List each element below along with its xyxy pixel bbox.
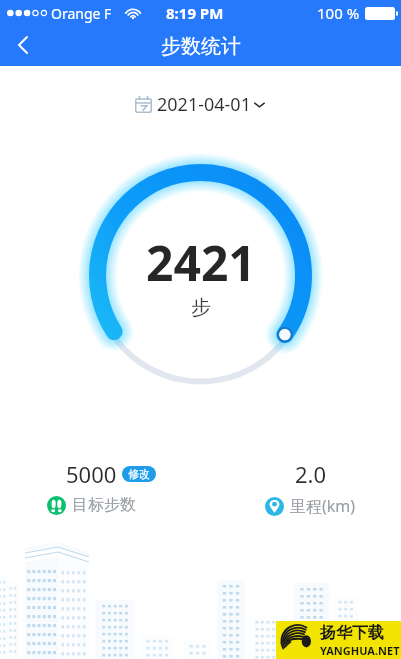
staticText: 里程(km) bbox=[290, 495, 356, 517]
staticText: 目标步数 bbox=[72, 495, 136, 515]
staticText: 8:19 PM bbox=[166, 3, 224, 23]
staticText: 步数统计 bbox=[161, 34, 241, 59]
button[interactable]: Back bbox=[5, 27, 41, 63]
staticText: YANGHUA.NET bbox=[320, 643, 400, 658]
staticText: 5000 bbox=[66, 459, 117, 489]
staticText: 2.0 bbox=[295, 459, 327, 489]
staticText: Orange F bbox=[51, 4, 112, 23]
staticText: 2021-04-01 bbox=[157, 92, 251, 117]
button[interactable]: 修改 bbox=[122, 466, 156, 482]
staticText: 100 % bbox=[317, 3, 360, 23]
staticText: 扬华下载 bbox=[320, 623, 384, 643]
button[interactable]: 2021-04-01 bbox=[131, 90, 270, 119]
staticText: 2421 bbox=[146, 230, 256, 295]
staticText: 修改 bbox=[128, 467, 150, 481]
staticText: 步 bbox=[191, 295, 211, 320]
